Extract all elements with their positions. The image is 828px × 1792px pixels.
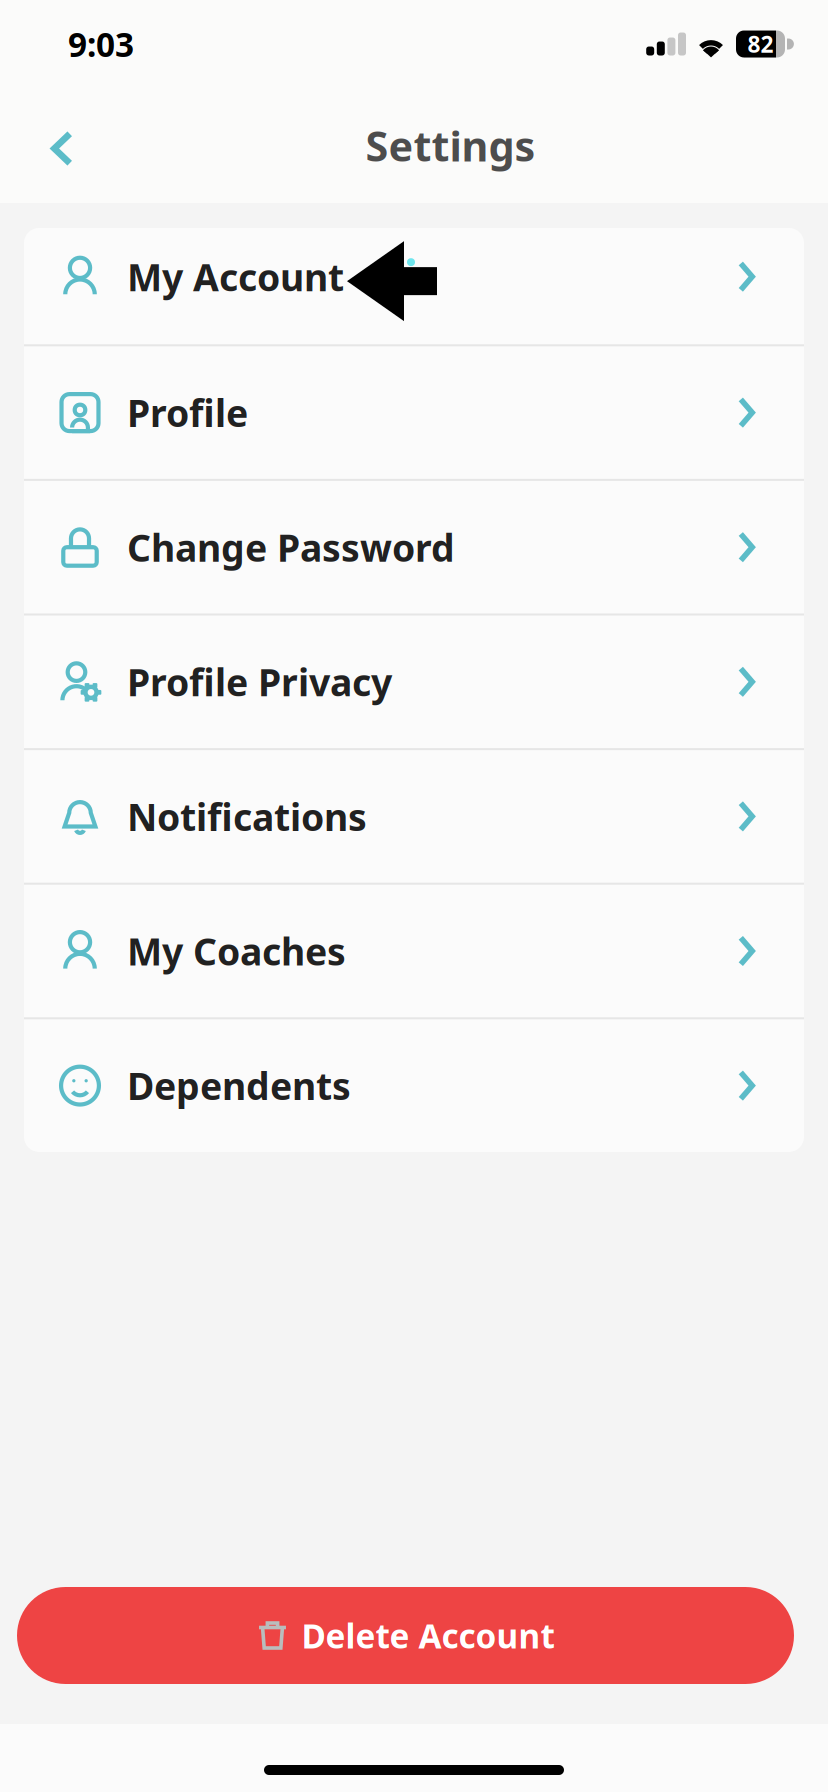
staticText: Delete Account — [301, 1613, 554, 1658]
staticText: Profile — [127, 388, 248, 437]
button[interactable]: Profile — [24, 346, 804, 479]
staticText: Settings — [365, 118, 535, 173]
staticText: Notifications — [127, 792, 367, 841]
button[interactable]: Change Password — [24, 481, 804, 613]
button[interactable]: Back — [0, 88, 103, 203]
staticText: Profile Privacy — [127, 657, 392, 707]
staticText: Dependents — [127, 1061, 351, 1110]
button[interactable]: My Coaches — [24, 885, 804, 1017]
button[interactable]: Notifications — [24, 750, 804, 883]
staticText: 82 — [747, 29, 773, 59]
staticText: My Account — [127, 252, 344, 301]
staticText: Change Password — [127, 522, 455, 572]
staticText: My Coaches — [127, 926, 346, 976]
button[interactable]: Profile Privacy — [24, 615, 804, 748]
button[interactable]: My Account — [24, 228, 804, 344]
button[interactable]: Dependents — [24, 1019, 804, 1152]
staticText: 9:03 — [68, 22, 134, 66]
button[interactable]: Delete Account — [17, 1587, 794, 1684]
